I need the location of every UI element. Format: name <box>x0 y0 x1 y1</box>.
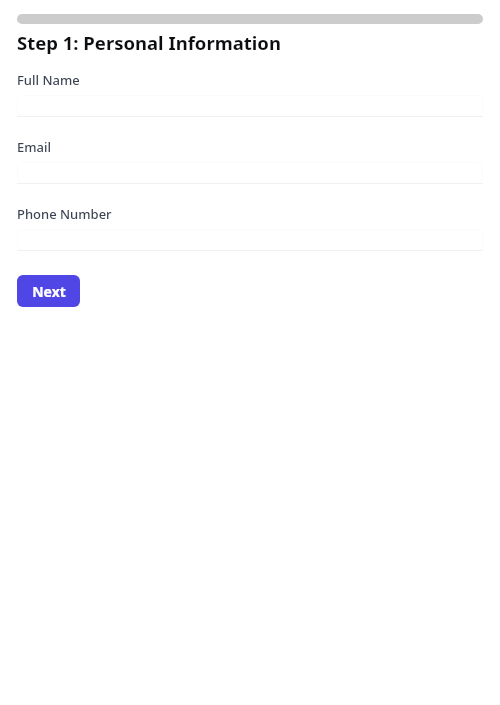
button[interactable]: Full Name <box>17 95 483 117</box>
staticText: Next <box>32 282 66 301</box>
staticText: Full Name <box>17 71 80 89</box>
button[interactable]: Email <box>17 162 483 184</box>
button[interactable]: Phone Number <box>17 229 483 251</box>
button[interactable]: Next <box>17 275 80 307</box>
staticText: Step 1: Personal Information <box>17 30 281 55</box>
staticText: Email <box>17 138 52 156</box>
staticText: Phone Number <box>17 205 112 223</box>
